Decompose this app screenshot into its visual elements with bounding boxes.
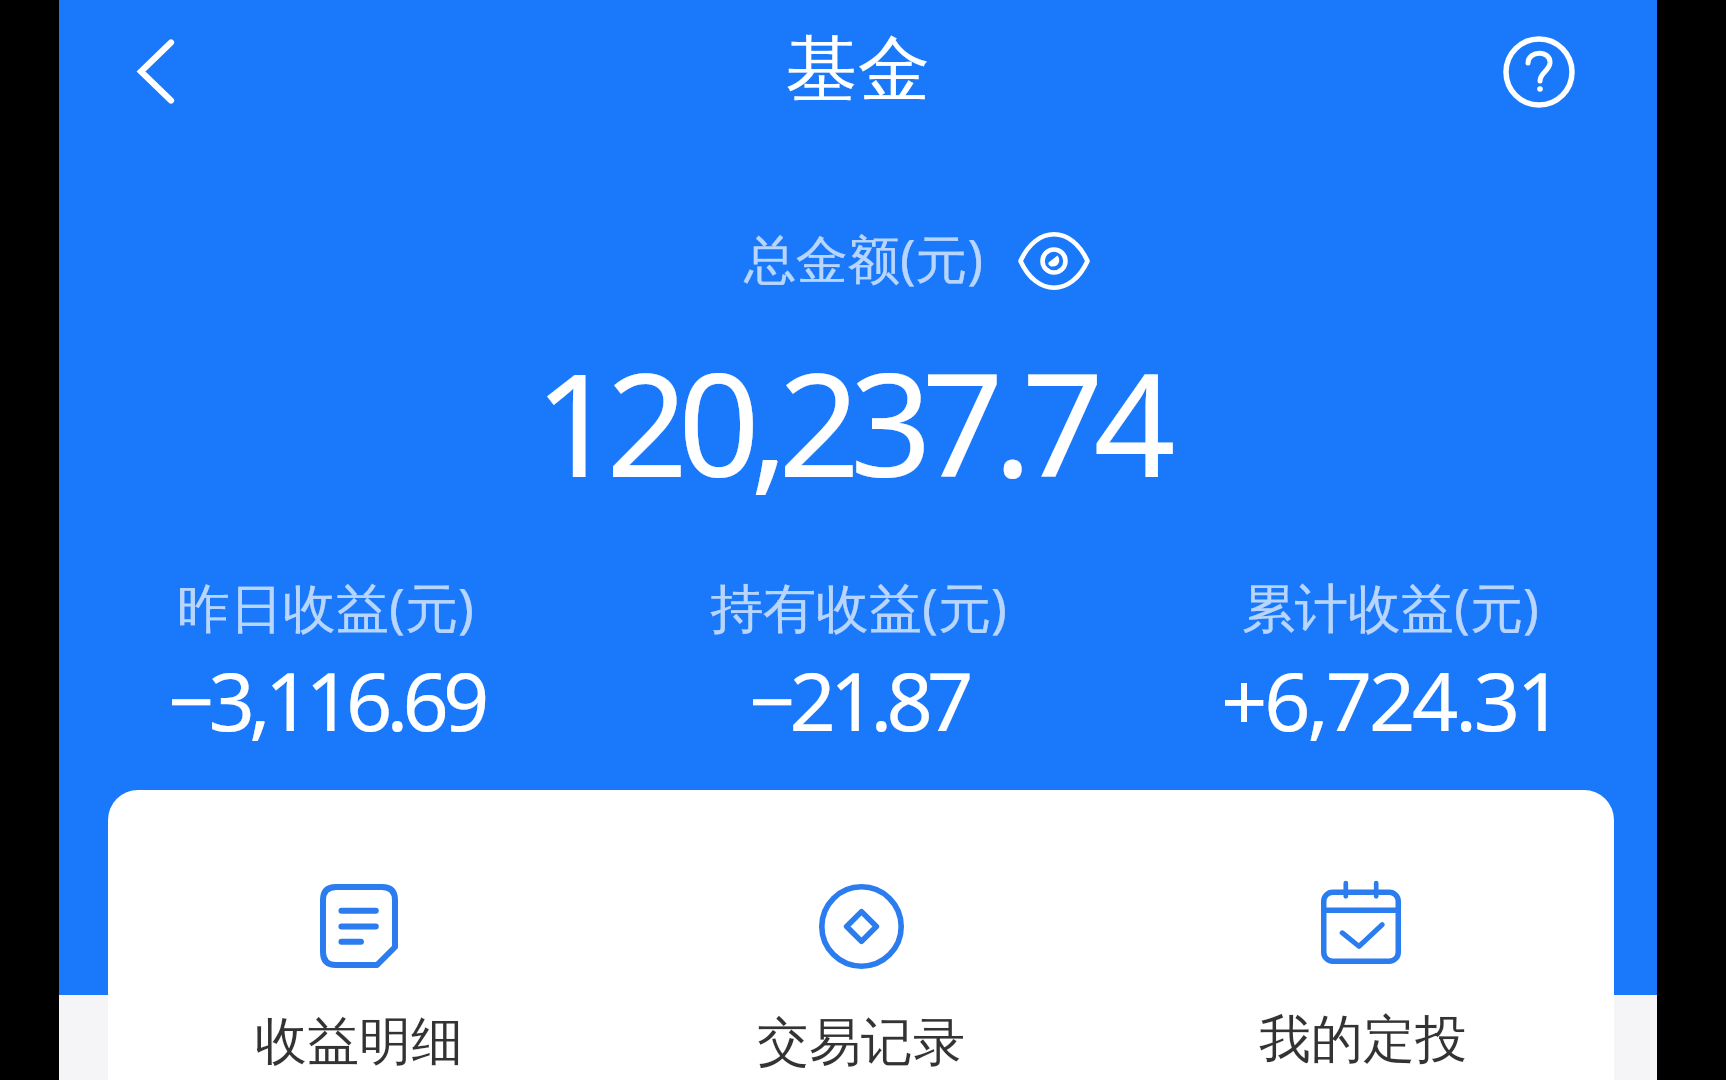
staticText: 总金额(元) [744, 222, 984, 293]
button[interactable]: 我的定投 [1112, 790, 1614, 1080]
staticText: 交易记录 [757, 1010, 965, 1076]
button[interactable]: Help [1493, 26, 1585, 118]
button[interactable]: Toggle amount visibility [1009, 216, 1099, 306]
staticText: 120,237.74 [51, 324, 1649, 519]
staticText: −3,116.69 [168, 644, 484, 754]
staticText: 收益明细 [255, 1009, 463, 1075]
staticText: 基金 [59, 25, 1657, 116]
staticText: 累计收益(元) [1242, 570, 1539, 642]
staticText: 我的定投 [1259, 1007, 1467, 1073]
staticText: 昨日收益(元) [177, 570, 474, 642]
staticText: +6,724.31 [1221, 644, 1560, 754]
button[interactable]: 交易记录 [610, 790, 1112, 1080]
button[interactable]: 收益明细 [108, 790, 610, 1080]
staticText: 持有收益(元) [710, 570, 1007, 642]
staticText: −21.87 [749, 644, 968, 754]
button[interactable]: Back [106, 22, 206, 122]
